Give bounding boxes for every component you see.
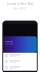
staticText: and more [13,7,26,10]
staticText: Free Trial [5,41,12,43]
staticText: 7 days on us [5,43,14,45]
button[interactable] [3,59,37,65]
button[interactable] [3,53,37,59]
staticText: Create a Free Trial [6,2,33,6]
button[interactable] [3,65,37,71]
